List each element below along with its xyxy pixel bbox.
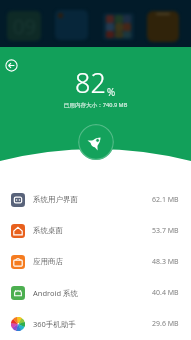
staticText: 53.7 MB <box>152 226 179 236</box>
button[interactable]: Android 系统 <box>0 277 191 308</box>
staticText: 系统桌面 <box>33 226 63 235</box>
staticText: 应用商店 <box>33 257 63 266</box>
staticText: 360手机助手 <box>33 319 76 329</box>
staticText: % <box>107 85 116 99</box>
staticText: Android 系统 <box>33 288 79 298</box>
button[interactable]: 应用商店 <box>0 246 191 277</box>
staticText: 40.4 MB <box>152 288 179 298</box>
button[interactable]: Boost <box>78 124 114 160</box>
button[interactable]: 系统用户界面 <box>0 184 191 215</box>
staticText: 已用内存大小：740.9 MB <box>0 101 191 109</box>
staticText: 82 <box>75 64 106 101</box>
staticText: 62.1 MB <box>152 195 179 205</box>
button[interactable]: Back <box>4 58 19 73</box>
staticText: 48.3 MB <box>152 257 179 267</box>
button[interactable]: 系统桌面 <box>0 215 191 246</box>
button[interactable]: 360手机助手 <box>0 308 191 339</box>
staticText: 29.6 MB <box>152 319 179 329</box>
staticText: 系统用户界面 <box>33 195 78 204</box>
